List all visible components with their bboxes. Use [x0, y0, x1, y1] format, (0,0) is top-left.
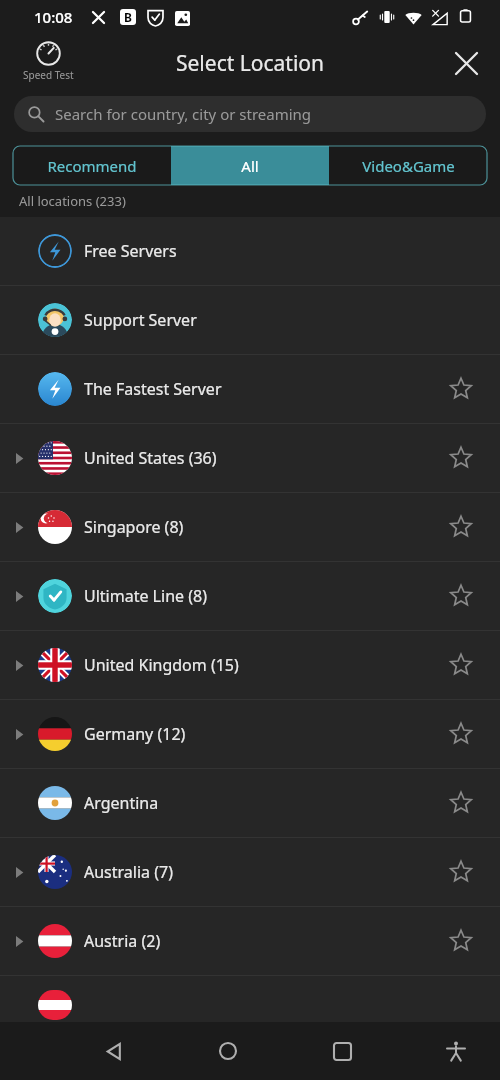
- staticText: Speed Test: [23, 68, 74, 82]
- staticText: All: [241, 156, 259, 176]
- button[interactable]: Free Servers: [0, 217, 500, 285]
- button[interactable]: Recents: [318, 1027, 366, 1075]
- staticText: Select Location: [176, 49, 325, 78]
- button[interactable]: Favorite Australia (7): [437, 848, 485, 896]
- staticText: Germany (12): [84, 723, 186, 745]
- staticText: United Kingdom (15): [84, 654, 239, 676]
- button[interactable]: Accessibility: [432, 1027, 480, 1075]
- button[interactable]: All: [171, 146, 329, 185]
- button[interactable]: Ultimate Line (8): [0, 562, 500, 630]
- button[interactable]: United Kingdom (15): [0, 631, 500, 699]
- button[interactable]: Favorite Ultimate Line (8): [437, 572, 485, 620]
- button[interactable]: Favorite Germany (12): [437, 710, 485, 758]
- button[interactable]: Singapore (8): [0, 493, 500, 561]
- staticText: Video&Game: [362, 156, 455, 176]
- staticText: United States (36): [84, 447, 217, 469]
- button[interactable]: Austria (2): [0, 907, 500, 975]
- button[interactable]: Search for country, city or streaming: [14, 96, 486, 132]
- button[interactable]: Germany (12): [0, 700, 500, 768]
- staticText: B: [124, 9, 132, 25]
- staticText: Singapore (8): [84, 516, 184, 538]
- button[interactable]: Support Server: [0, 286, 500, 354]
- button[interactable]: Recommend: [13, 146, 171, 185]
- button[interactable]: Close: [444, 41, 488, 85]
- staticText: Free Servers: [84, 240, 177, 262]
- button[interactable]: Home: [204, 1027, 252, 1075]
- button[interactable]: Australia (7): [0, 838, 500, 906]
- button[interactable]: United States (36): [0, 424, 500, 492]
- button[interactable]: Favorite Singapore (8): [437, 503, 485, 551]
- button[interactable]: Back: [90, 1027, 138, 1075]
- staticText: All locations (233): [19, 192, 126, 210]
- staticText: Australia (7): [84, 861, 173, 883]
- staticText: The Fastest Server: [84, 378, 222, 400]
- staticText: Austria (2): [84, 930, 161, 952]
- button[interactable]: Argentina: [0, 769, 500, 837]
- button[interactable]: The Fastest Server: [0, 355, 500, 423]
- button[interactable]: Video&Game: [329, 146, 487, 185]
- button[interactable]: Favorite Argentina: [437, 779, 485, 827]
- staticText: Support Server: [84, 309, 197, 331]
- staticText: Ultimate Line (8): [84, 585, 207, 607]
- button[interactable]: Favorite The Fastest Server: [437, 365, 485, 413]
- button[interactable]: Favorite United Kingdom (15): [437, 641, 485, 689]
- staticText: Recommend: [47, 156, 137, 176]
- staticText: Argentina: [84, 792, 159, 814]
- staticText: Search for country, city or streaming: [55, 104, 312, 124]
- button[interactable]: Favorite United States (36): [437, 434, 485, 482]
- button[interactable]: Favorite Austria (2): [437, 917, 485, 965]
- staticText: 10:08: [34, 7, 73, 27]
- button[interactable]: Speed Test: [14, 38, 82, 85]
